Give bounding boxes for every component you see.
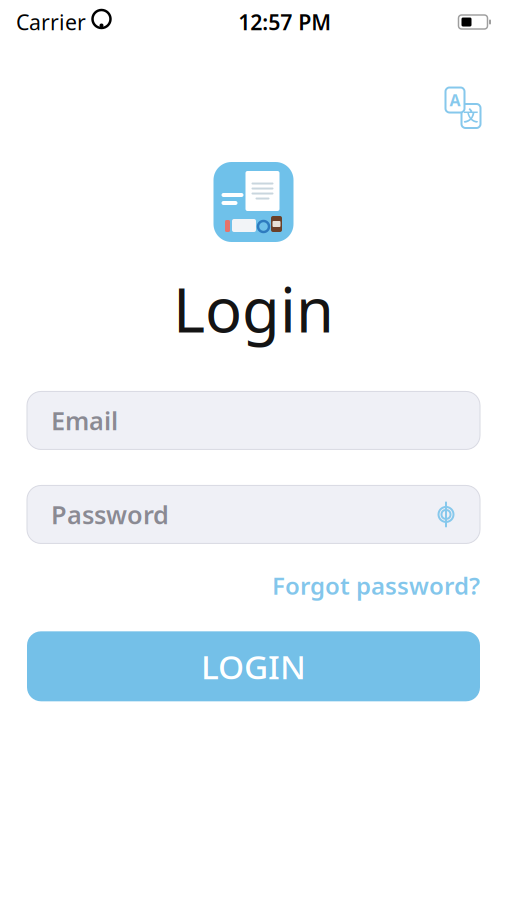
- staticText: 文: [463, 107, 478, 125]
- button[interactable]: Forgot password?: [272, 563, 480, 607]
- staticText: A: [449, 89, 460, 111]
- staticText: Forgot password?: [272, 569, 480, 601]
- staticText: Carrier: [16, 8, 86, 36]
- staticText: Email: [51, 404, 118, 437]
- button[interactable]: LOGIN: [27, 631, 480, 701]
- staticText: Password: [51, 498, 169, 531]
- staticText: Login: [173, 268, 334, 349]
- staticText: 12:57 PM: [238, 8, 331, 36]
- button[interactable]: Change language: [441, 86, 485, 130]
- staticText: LOGIN: [201, 644, 306, 688]
- button[interactable]: Show password: [428, 496, 464, 532]
